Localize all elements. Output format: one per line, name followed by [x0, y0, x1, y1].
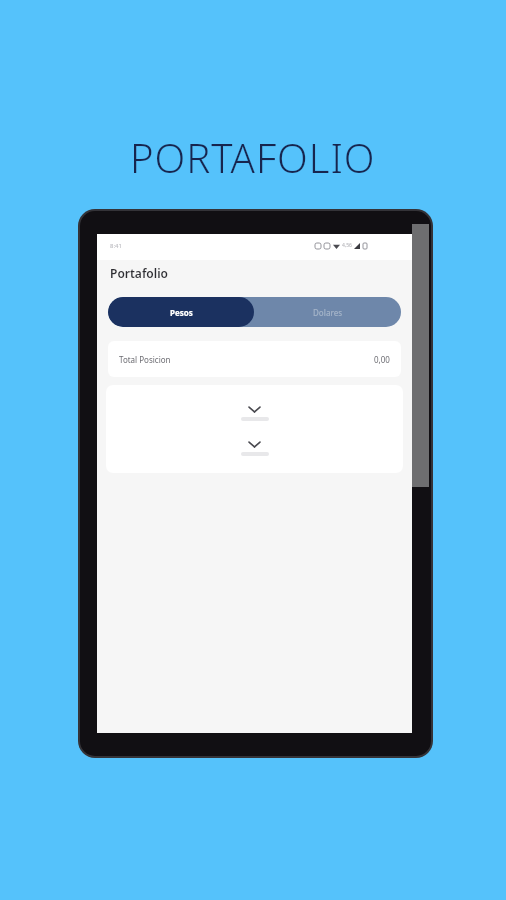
button[interactable]: Expandir seccion	[106, 406, 403, 436]
staticText: 8:41	[110, 242, 122, 250]
staticText: Total Posicion	[119, 354, 171, 365]
button[interactable]: Expandir seccion	[106, 441, 403, 471]
button[interactable]: Dolares	[254, 297, 401, 327]
button[interactable]: Total Posicion	[108, 341, 401, 377]
staticText: Pesos	[170, 307, 193, 318]
staticText: PORTAFOLIO	[130, 130, 376, 184]
button[interactable]: Pesos	[108, 297, 254, 327]
staticText: Dolares	[313, 307, 343, 318]
staticText: 0,00	[374, 354, 390, 365]
staticText: 4,56	[342, 242, 352, 249]
staticText: Portafolio	[110, 265, 168, 281]
